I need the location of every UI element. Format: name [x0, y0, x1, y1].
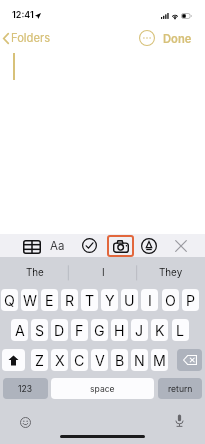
button[interactable]: Aa: [49, 237, 66, 255]
button[interactable]: Backspace: [177, 349, 202, 371]
button[interactable]: 123: [3, 378, 48, 399]
staticText: K: [155, 322, 165, 339]
staticText: I: [102, 267, 105, 279]
button[interactable]: D: [51, 319, 68, 341]
staticText: G: [94, 322, 105, 339]
staticText: W: [23, 292, 37, 309]
button[interactable]: T: [81, 289, 98, 311]
staticText: 123: [18, 384, 33, 394]
staticText: F: [75, 322, 84, 339]
staticText: A: [15, 322, 25, 339]
staticText: return: [168, 384, 193, 394]
staticText: Q: [4, 292, 15, 309]
button[interactable]: S: [31, 319, 48, 341]
button[interactable]: Camera: [107, 235, 134, 257]
button[interactable]: Z: [31, 349, 48, 371]
staticText: M: [153, 352, 166, 369]
staticText: Folders: [11, 31, 51, 45]
button[interactable]: Dictation: [171, 412, 187, 428]
button[interactable]: Markup: [141, 234, 157, 257]
staticText: D: [54, 322, 65, 339]
staticText: They: [159, 267, 183, 279]
button[interactable]: G: [91, 319, 108, 341]
button[interactable]: Folders: [1, 29, 53, 47]
button[interactable]: F: [71, 319, 88, 341]
staticText: E: [45, 292, 54, 309]
staticText: V: [95, 352, 105, 369]
button[interactable]: U: [121, 289, 138, 311]
button[interactable]: Close: [174, 234, 188, 257]
button[interactable]: Checklist: [82, 234, 97, 257]
button[interactable]: Shift: [2, 349, 25, 371]
button[interactable]: C: [71, 349, 88, 371]
button[interactable]: X: [51, 349, 68, 371]
button[interactable]: K: [151, 319, 168, 341]
staticText: 12:41: [12, 9, 34, 20]
button[interactable]: The: [0, 257, 69, 288]
button[interactable]: M: [151, 349, 168, 371]
button[interactable]: A: [11, 319, 28, 341]
button[interactable]: Q: [1, 289, 18, 311]
button[interactable]: Emoji: [17, 414, 33, 430]
staticText: C: [74, 352, 85, 369]
staticText: Done: [163, 32, 192, 46]
staticText: B: [115, 352, 125, 369]
staticText: L: [176, 322, 185, 339]
button[interactable]: W: [21, 289, 38, 311]
button[interactable]: J: [131, 319, 148, 341]
staticText: N: [134, 352, 145, 369]
button[interactable]: I: [141, 289, 158, 311]
button[interactable]: R: [61, 289, 78, 311]
staticText: P: [186, 292, 196, 309]
staticText: T: [85, 292, 95, 309]
button[interactable]: N: [131, 349, 148, 371]
staticText: H: [114, 322, 125, 339]
staticText: Z: [35, 352, 44, 369]
button[interactable]: L: [172, 319, 189, 341]
staticText: U: [124, 292, 135, 309]
staticText: J: [135, 322, 144, 339]
button[interactable]: O: [162, 289, 179, 311]
staticText: space: [90, 384, 115, 394]
button[interactable]: Y: [101, 289, 118, 311]
button[interactable]: return: [158, 378, 202, 399]
staticText: O: [165, 292, 176, 309]
staticText: Aa: [50, 239, 65, 253]
staticText: The: [26, 267, 44, 279]
button[interactable]: They: [137, 257, 205, 288]
staticText: Y: [105, 292, 115, 309]
button[interactable]: I: [69, 257, 137, 288]
button[interactable]: space: [51, 378, 154, 399]
staticText: I: [148, 292, 152, 309]
button[interactable]: P: [182, 289, 199, 311]
staticText: S: [35, 322, 45, 339]
button[interactable]: More: [139, 30, 155, 46]
staticText: X: [55, 352, 65, 369]
button[interactable]: V: [91, 349, 108, 371]
button[interactable]: E: [41, 289, 58, 311]
button[interactable]: H: [111, 319, 128, 341]
button[interactable]: B: [111, 349, 128, 371]
staticText: R: [65, 292, 75, 309]
button[interactable]: Done: [160, 29, 195, 49]
button[interactable]: Table: [23, 234, 41, 257]
